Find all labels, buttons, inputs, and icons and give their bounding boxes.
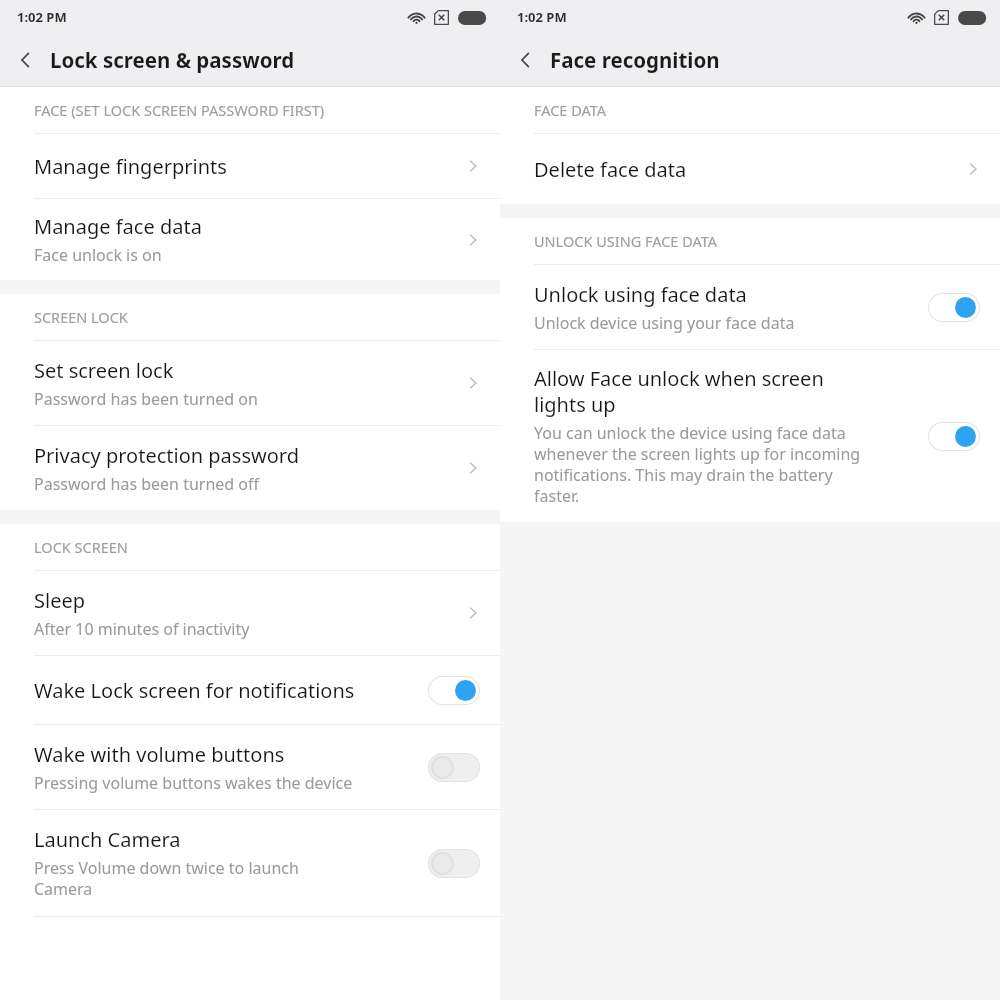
button[interactable]: Toggle on (926, 421, 982, 451)
staticText: Delete face data (534, 156, 687, 183)
staticText: 1:02 PM (517, 8, 567, 26)
staticText: LOCK SCREEN (34, 537, 128, 557)
staticText: Press Volume down twice to launch Camera (34, 857, 299, 900)
button[interactable]: Toggle off (426, 848, 482, 878)
staticText: Unlock using face data (534, 281, 747, 308)
staticText: After 10 minutes of inactivity (34, 618, 250, 640)
button[interactable]: Sleep (0, 571, 500, 655)
button[interactable]: Wake Lock screen for notifications (0, 656, 500, 724)
button[interactable]: Back (504, 38, 548, 82)
staticText: Password has been turned off (34, 473, 260, 495)
staticText: Face recognition (550, 46, 720, 74)
staticText: Launch Camera (34, 826, 181, 853)
button[interactable]: Manage fingerprints (0, 134, 500, 198)
staticText: Password has been turned on (34, 388, 258, 410)
staticText: You can unlock the device using face dat… (534, 422, 861, 507)
staticText: SCREEN LOCK (34, 307, 128, 327)
staticText: Wake Lock screen for notifications (34, 677, 355, 704)
staticText: 1:02 PM (17, 8, 67, 26)
staticText: Face unlock is on (34, 244, 162, 266)
button[interactable]: Allow Face unlock when screen lights up (500, 350, 1000, 522)
staticText: Set screen lock (34, 357, 174, 384)
staticText: Allow Face unlock when screen lights up (534, 365, 824, 418)
staticText: FACE DATA (534, 100, 607, 120)
button[interactable]: Privacy protection password (0, 426, 500, 510)
staticText: Privacy protection password (34, 442, 299, 469)
staticText: Lock screen & password (50, 46, 295, 74)
staticText: Unlock device using your face data (534, 312, 795, 334)
staticText: Manage face data (34, 213, 202, 240)
button[interactable]: Set screen lock (0, 341, 500, 425)
button[interactable]: Delete face data (500, 134, 1000, 204)
button[interactable]: Unlock using face data (500, 265, 1000, 349)
staticText: Wake with volume buttons (34, 741, 285, 768)
button[interactable]: Toggle on (926, 292, 982, 322)
staticText: Sleep (34, 587, 85, 614)
button[interactable]: Launch Camera (0, 810, 500, 916)
staticText: Pressing volume buttons wakes the device (34, 772, 353, 794)
staticText: Manage fingerprints (34, 153, 227, 180)
staticText: UNLOCK USING FACE DATA (534, 231, 718, 251)
button[interactable]: Toggle on (426, 675, 482, 705)
button[interactable]: Back (4, 38, 48, 82)
button[interactable]: Manage face data (0, 199, 500, 280)
button[interactable]: Wake with volume buttons (0, 725, 500, 809)
button[interactable]: Toggle off (426, 752, 482, 782)
staticText: FACE (SET LOCK SCREEN PASSWORD FIRST) (34, 100, 325, 120)
